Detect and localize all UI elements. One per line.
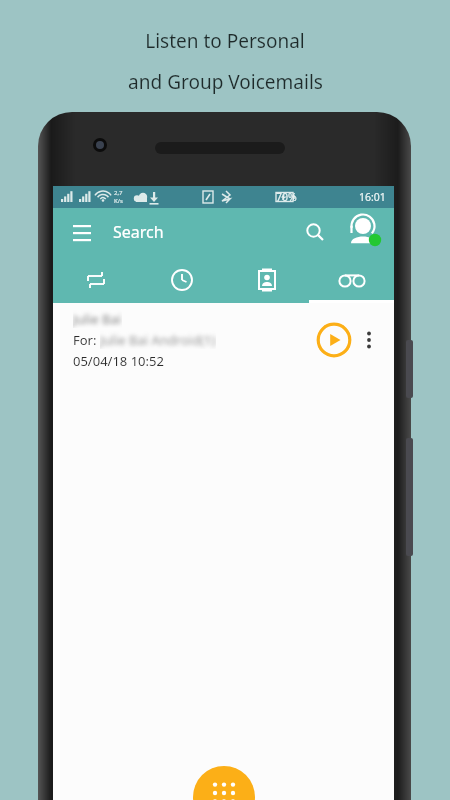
staticText: Listen to Personal [145,28,305,54]
button[interactable]: Play [316,322,352,358]
staticText: K/s [114,197,123,205]
staticText: Julie Bai Android(1) [100,331,216,349]
button[interactable]: More options [352,323,386,357]
staticText: Julie Bai [73,310,122,328]
button[interactable]: Transfer [53,256,139,303]
staticText: For: [73,331,100,349]
staticText: and Group Voicemails [128,69,323,95]
button[interactable]: Dialpad [193,766,255,800]
button[interactable]: Menu [65,215,99,249]
staticText: 70% [276,190,297,204]
staticText: 2,7 [114,189,123,197]
staticText: 16:01 [359,190,386,204]
button[interactable]: Contacts [224,256,309,303]
button[interactable]: Voicemail [309,256,394,303]
staticText: Search [113,221,164,243]
button[interactable]: Account [344,212,384,252]
button[interactable]: Recent [139,256,224,303]
button[interactable]: Julie Bai [53,303,394,377]
button[interactable]: Search [298,215,332,249]
staticText: 05/04/18 10:52 [73,352,164,370]
